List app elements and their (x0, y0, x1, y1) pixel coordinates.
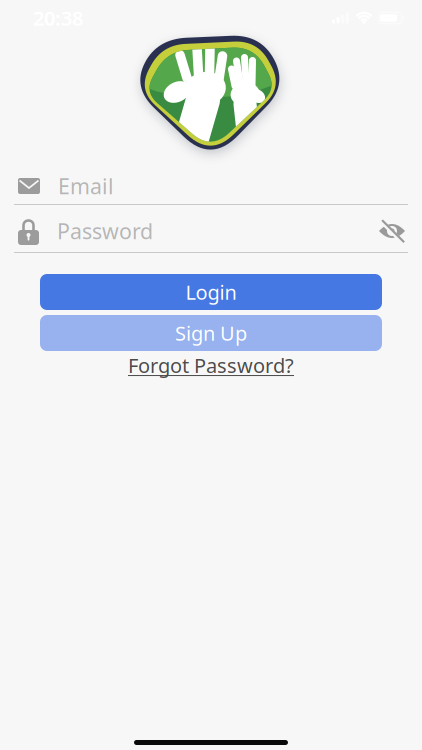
button[interactable]: Show password (378, 220, 422, 242)
staticText: Forgot Password? (128, 352, 294, 379)
staticText: 20:38 (33, 5, 83, 31)
staticText: Email (58, 172, 114, 200)
button[interactable]: Password (0, 217, 378, 245)
button[interactable]: Forgot Password? (128, 352, 294, 379)
button[interactable]: Login (40, 274, 382, 310)
button[interactable]: Sign Up (40, 315, 382, 351)
button[interactable]: Email (0, 174, 422, 205)
staticText: Sign Up (175, 320, 247, 346)
staticText: Password (57, 217, 153, 245)
staticText: Login (185, 279, 236, 305)
